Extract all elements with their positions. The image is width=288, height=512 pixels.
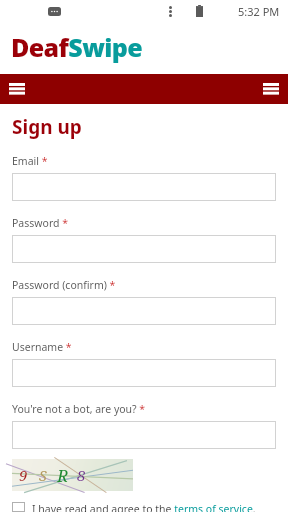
staticText: Password * xyxy=(12,216,69,230)
button[interactable] xyxy=(12,297,276,325)
button[interactable]: Captcha image xyxy=(12,459,133,491)
staticText: Username * xyxy=(12,340,72,354)
staticText: 9 xyxy=(19,465,28,485)
button[interactable]: I have read and agree to the terms of se… xyxy=(12,502,276,512)
button[interactable] xyxy=(12,173,276,201)
staticText: Password (confirm) * xyxy=(12,278,116,292)
staticText: 8 xyxy=(77,465,86,485)
button[interactable]: Open options menu xyxy=(256,74,286,104)
staticText: R xyxy=(57,464,69,487)
button[interactable]: Open navigation menu xyxy=(2,74,32,104)
staticText: DeafSwipe xyxy=(11,30,143,64)
button[interactable] xyxy=(12,235,276,263)
button[interactable] xyxy=(12,359,276,387)
staticText: S xyxy=(39,466,47,485)
staticText: Sign up xyxy=(12,114,82,140)
staticText: Email * xyxy=(12,154,48,168)
staticText: You're not a bot, are you? * xyxy=(12,402,146,416)
button[interactable] xyxy=(12,421,276,449)
staticText: I have read and agree to the terms of se… xyxy=(32,502,256,512)
staticText: 5:32 PM xyxy=(238,4,280,19)
